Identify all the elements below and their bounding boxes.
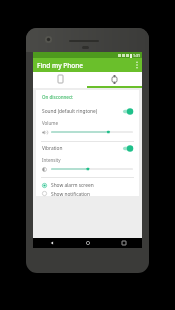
button[interactable]: Show notification (36, 191, 139, 196)
button[interactable]: Back (33, 238, 70, 248)
button[interactable]: Watch tab (87, 72, 142, 86)
staticText: Sound (default ringtone) (42, 108, 123, 115)
button[interactable]: Toggle (123, 145, 133, 152)
button[interactable]: Toggle (123, 108, 133, 115)
staticText: On disconnect (42, 94, 73, 100)
staticText: Vibration (42, 145, 123, 152)
button[interactable]: Vibration (36, 142, 139, 154)
staticText: Find my Phone (37, 61, 84, 70)
button[interactable]: Slider (51, 165, 133, 173)
button[interactable]: Home (70, 238, 106, 248)
staticText: Intensity (42, 157, 61, 163)
button[interactable]: Sound (default ringtone) (36, 105, 139, 117)
staticText: Show notification (51, 191, 90, 196)
button[interactable]: Slider (51, 128, 133, 136)
button[interactable]: More options (132, 58, 142, 72)
button[interactable]: Show alarm screen (36, 180, 139, 191)
button[interactable]: Phone tab (33, 72, 87, 86)
staticText: 1:31 (133, 53, 140, 58)
staticText: Volume (42, 120, 59, 126)
staticText: Show alarm screen (51, 182, 94, 189)
button[interactable]: Recents (106, 238, 142, 248)
